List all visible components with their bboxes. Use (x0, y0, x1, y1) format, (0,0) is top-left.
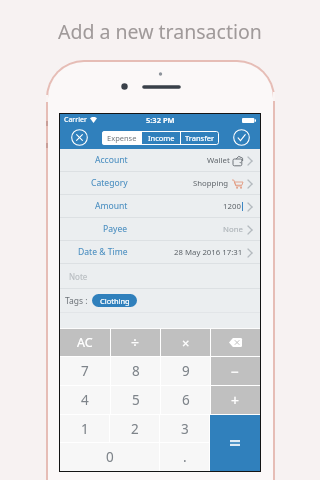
staticText: . (183, 448, 187, 466)
staticText: None (223, 224, 243, 235)
staticText: − (231, 362, 240, 381)
button[interactable]: 0 (60, 443, 159, 471)
staticText: Account (95, 154, 128, 166)
staticText: Date & Time (78, 246, 128, 258)
button[interactable]: 1 (60, 415, 109, 442)
button[interactable] (210, 415, 260, 471)
button[interactable]: 4 (60, 386, 110, 414)
button[interactable]: Expense (102, 131, 141, 145)
staticText: 7 (81, 362, 89, 380)
button[interactable]: AC (60, 329, 110, 356)
staticText: 2 (131, 420, 139, 438)
staticText: × (182, 334, 190, 352)
button[interactable]: Income (142, 131, 180, 145)
staticText: Transfer (185, 133, 215, 143)
staticText: Add a new transaction (58, 18, 262, 45)
button[interactable]: 2 (110, 415, 159, 442)
button[interactable]: 5 (111, 386, 160, 414)
staticText: 0 (106, 448, 114, 466)
button[interactable]: Date & Time (60, 241, 260, 263)
staticText: Tags : (65, 295, 88, 307)
button[interactable]: Backspace (211, 329, 260, 356)
button[interactable]: 6 (161, 386, 210, 414)
button[interactable]: Close (71, 129, 88, 146)
staticText: Payee (103, 223, 128, 235)
staticText: Amount (95, 200, 128, 212)
staticText: ÷ (131, 333, 140, 352)
staticText: 1200 (223, 201, 241, 212)
staticText: 5 (132, 391, 140, 409)
staticText: Category (91, 177, 128, 189)
staticText: Wallet (207, 155, 230, 166)
button[interactable]: Category (60, 172, 260, 194)
button[interactable]: 8 (111, 357, 160, 385)
staticText: + (231, 391, 240, 410)
button[interactable]: Amount (60, 195, 260, 217)
staticText: 6 (182, 391, 190, 409)
staticText: 1 (81, 420, 89, 438)
button[interactable]: Note (60, 264, 260, 288)
staticText: Shopping (193, 178, 229, 189)
button[interactable]: − (211, 357, 260, 385)
button[interactable]: Payee (60, 218, 260, 240)
staticText: 5:32 PM (146, 115, 175, 125)
button[interactable]: Confirm (233, 129, 250, 146)
button[interactable]: × (161, 329, 210, 356)
button[interactable]: 7 (60, 357, 110, 385)
staticText: 9 (182, 362, 190, 380)
staticText: 3 (181, 420, 189, 438)
staticText: Income (148, 133, 175, 143)
button[interactable]: + (211, 386, 260, 414)
button[interactable]: Transfer (181, 131, 219, 145)
staticText: Carrier (64, 115, 87, 125)
staticText: 28 May 2016 17:31 (174, 247, 243, 258)
staticText: 4 (81, 391, 89, 409)
staticText: AC (77, 334, 93, 351)
staticText: Expense (107, 133, 137, 143)
button[interactable]: . (160, 443, 209, 471)
button[interactable]: ÷ (111, 329, 160, 356)
button[interactable]: 9 (161, 357, 210, 385)
button[interactable]: Account (60, 149, 260, 171)
button[interactable]: 3 (160, 415, 209, 442)
staticText: Note (69, 271, 88, 282)
staticText: Clothing (100, 296, 130, 306)
button[interactable]: Clothing (92, 294, 137, 307)
staticText: 8 (132, 362, 140, 380)
